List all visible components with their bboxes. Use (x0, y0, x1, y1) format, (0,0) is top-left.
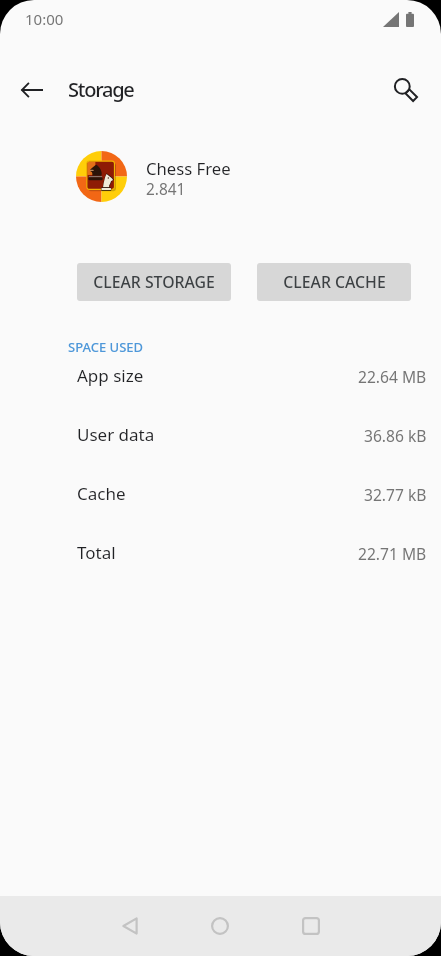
button[interactable]: App size (0, 364, 441, 423)
button[interactable]: Home (190, 896, 250, 956)
staticText: CLEAR CACHE (283, 271, 386, 293)
staticText: 2.841 (146, 179, 186, 200)
button[interactable]: Total (0, 541, 441, 600)
staticText: User data (77, 423, 155, 446)
button[interactable]: User data (0, 423, 441, 482)
staticText: 22.71 MB (358, 543, 427, 564)
button[interactable]: Cache (0, 482, 441, 541)
staticText: 22.64 MB (358, 366, 427, 387)
staticText: 36.86 kB (364, 425, 427, 446)
staticText: 10:00 (25, 9, 64, 29)
button[interactable]: Search (382, 66, 430, 114)
staticText: SPACE USED (68, 338, 144, 356)
staticText: Cache (77, 482, 126, 505)
staticText: 32.77 kB (364, 484, 427, 505)
button[interactable]: Recent apps (281, 896, 341, 956)
button[interactable]: Back (100, 896, 160, 956)
staticText: App size (77, 364, 144, 387)
staticText: Chess Free (146, 157, 231, 180)
button[interactable]: CLEAR STORAGE (77, 263, 231, 301)
button[interactable]: CLEAR CACHE (257, 263, 411, 301)
staticText: Total (77, 541, 116, 564)
staticText: CLEAR STORAGE (93, 271, 215, 293)
button[interactable]: Back (8, 66, 56, 114)
staticText: Storage (68, 76, 134, 103)
